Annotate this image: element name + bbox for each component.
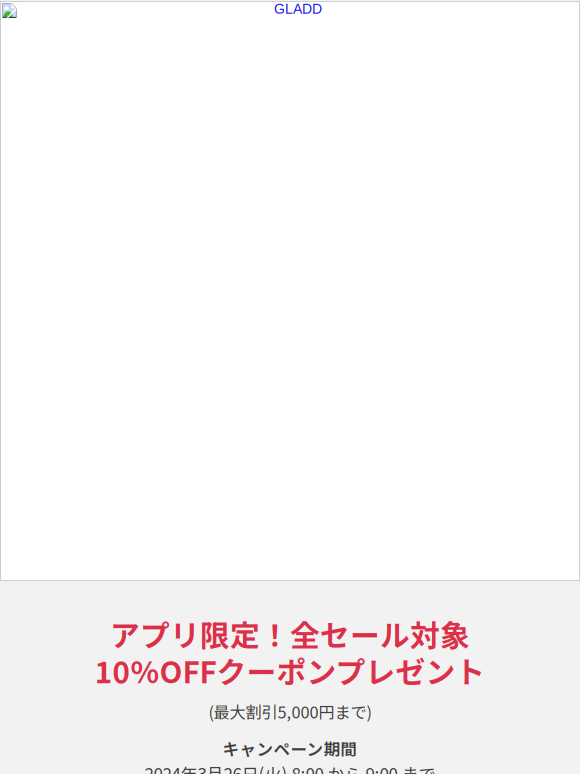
staticText: 2024年3月26日(火) 8:00 から 9:00 まで bbox=[144, 761, 435, 774]
staticText: アプリ限定！全セール対象 bbox=[110, 612, 470, 655]
staticText: (最大割引5,000円まで) bbox=[208, 700, 371, 723]
button[interactable]: GLADD bbox=[274, 1, 322, 17]
staticText: 10%OFFクーポンプレゼント bbox=[94, 649, 485, 692]
staticText: GLADD bbox=[274, 1, 322, 17]
staticText: キャンペーン期間 bbox=[222, 736, 357, 760]
